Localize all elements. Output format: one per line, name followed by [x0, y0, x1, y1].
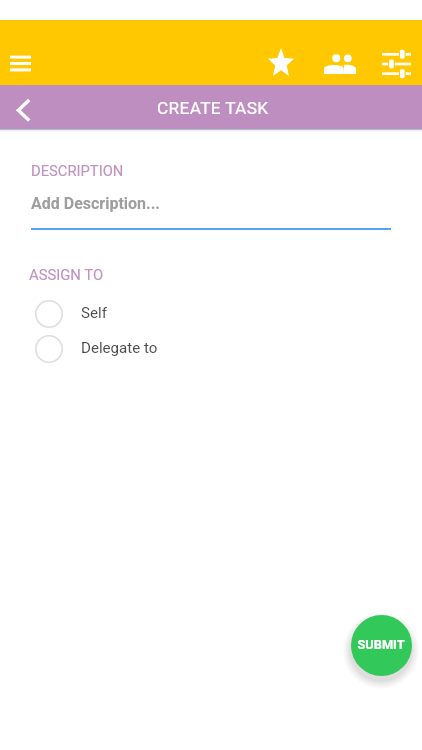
button[interactable]: Favorites [260, 43, 301, 84]
staticText: Self [81, 304, 107, 322]
button[interactable]: Settings [376, 43, 417, 84]
button[interactable]: Delegate to [0, 332, 422, 366]
button[interactable]: Back [2, 85, 42, 125]
staticText: ASSIGN TO [29, 266, 104, 283]
staticText: CREATE TASK [157, 98, 269, 118]
staticText: Delegate to [81, 339, 158, 357]
staticText: SUBMIT [357, 637, 405, 652]
button[interactable]: SUBMIT [351, 615, 412, 676]
button[interactable]: Self [0, 297, 422, 331]
button[interactable]: Menu [3, 46, 38, 81]
button[interactable]: People [319, 43, 360, 84]
staticText: Add Description... [31, 194, 160, 213]
staticText: DESCRIPTION [31, 162, 124, 179]
